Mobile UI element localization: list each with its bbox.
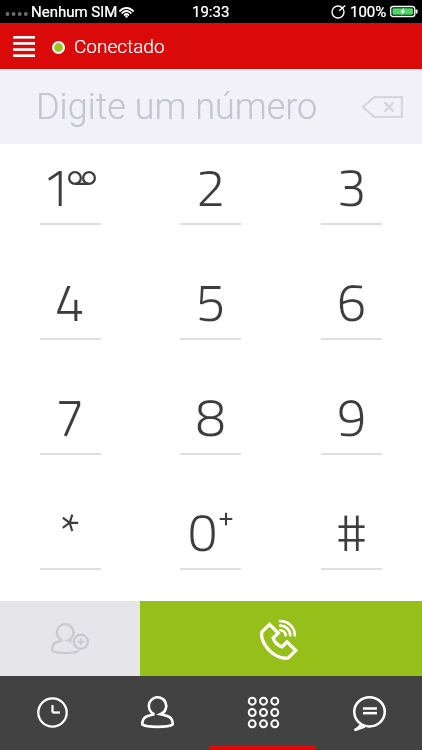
staticText: Nenhum SIM [31,3,118,21]
button[interactable]: Keypad [210,676,316,750]
button[interactable]: Recent calls [0,676,105,750]
button[interactable]: # [281,489,422,603]
staticText: 19:33 [192,3,230,21]
button[interactable]: 9 [281,374,422,489]
button[interactable]: Call [140,601,422,676]
button[interactable]: Contacts [105,676,210,750]
staticText: 1 [42,147,72,209]
staticText: * [59,492,81,554]
button[interactable]: 4 [0,259,140,374]
button[interactable]: 7 [0,374,140,489]
button[interactable]: Add contact [0,601,140,676]
button[interactable]: 5 [140,259,281,374]
button[interactable]: 0 [140,489,281,603]
staticText: Digite um número [36,86,318,128]
button[interactable]: 6 [281,259,422,374]
button[interactable]: Backspace [342,69,422,144]
staticText: 0 [188,492,218,554]
button[interactable]: 2 [140,144,281,259]
staticText: 7 [55,377,85,439]
staticText: 6 [337,262,367,324]
staticText: # [337,492,367,554]
button[interactable]: 1 [0,144,140,259]
staticText: 2 [196,147,226,209]
button[interactable]: 3 [281,144,422,259]
staticText: Conectado [74,35,165,57]
staticText: 100% [350,3,387,21]
button[interactable]: 8 [140,374,281,489]
button[interactable]: * [0,489,140,603]
staticText: 4 [55,262,85,324]
staticText: 5 [196,262,226,324]
button[interactable]: Messages [316,676,422,750]
staticText: 9 [337,377,367,439]
staticText: 8 [196,377,226,439]
button[interactable]: Menu [0,23,48,69]
staticText: 3 [337,147,367,209]
